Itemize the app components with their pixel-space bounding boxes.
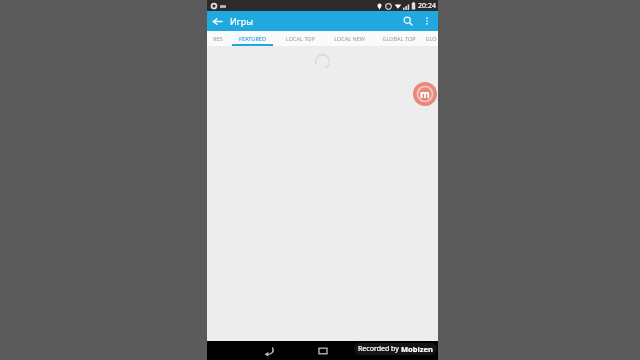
button[interactable]: Back [259,341,279,360]
button[interactable]: RES [207,31,229,46]
button[interactable]: Home [313,341,333,360]
staticText: FEATURED [239,35,266,42]
button[interactable]: GLO [424,31,438,46]
staticText: LOCAL TOP [286,35,315,42]
button[interactable]: More options [418,12,436,30]
staticText: Mobizen [401,344,433,354]
button[interactable]: LOCAL NEW [324,31,374,46]
staticText: Игры [230,15,254,27]
staticText: 20:24 [418,1,436,11]
staticText: GLOBAL TOP [382,35,416,42]
button[interactable]: LOCAL TOP [276,31,324,46]
staticText: m [420,87,430,101]
button[interactable]: Search [398,11,418,31]
button[interactable]: Back [207,11,227,31]
button[interactable]: FEATURED [229,31,276,46]
staticText: LOCAL NEW [334,35,365,42]
button[interactable]: Mobizen recorder [413,82,437,106]
staticText: GLO [425,35,437,42]
staticText: RES [213,35,223,42]
button[interactable]: GLOBAL TOP [374,31,424,46]
staticText: Recorded by [358,344,401,354]
